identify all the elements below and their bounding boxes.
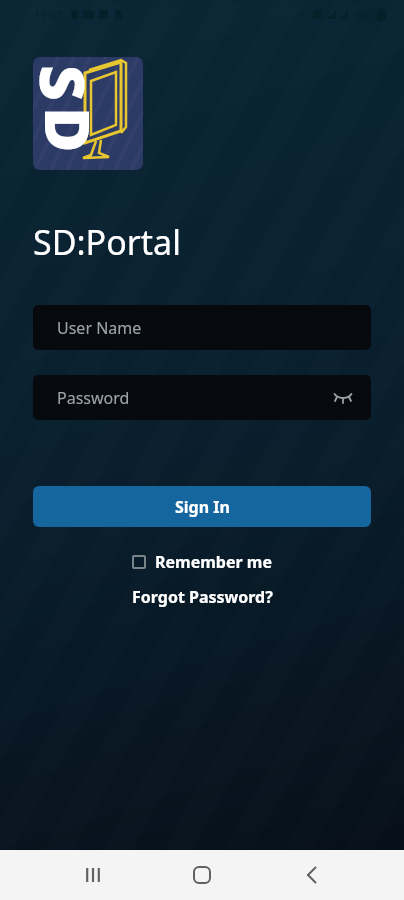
button[interactable]: Sign In xyxy=(33,486,371,527)
button[interactable]: User Name xyxy=(33,305,371,350)
staticText: Remember me xyxy=(155,551,272,573)
button[interactable] xyxy=(288,852,334,898)
staticText: D xyxy=(33,107,111,153)
staticText: SD:Portal xyxy=(33,219,181,265)
button[interactable] xyxy=(179,852,225,898)
staticText: Sign In xyxy=(175,496,230,518)
staticText: 19:07 xyxy=(34,7,63,22)
button[interactable]: Remember me xyxy=(0,551,404,573)
staticText: User Name xyxy=(57,317,142,339)
button[interactable]: Forgot Password? xyxy=(132,586,273,608)
button[interactable] xyxy=(70,852,116,898)
staticText: Password xyxy=(57,387,130,409)
button[interactable]: Password xyxy=(33,375,371,420)
staticText: S xyxy=(33,65,106,101)
